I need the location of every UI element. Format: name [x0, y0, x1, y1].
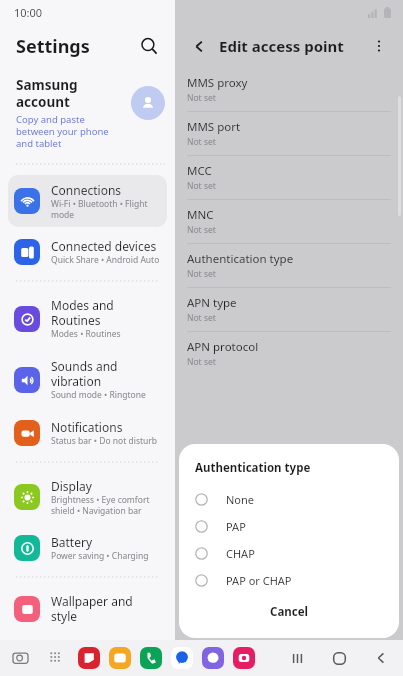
button[interactable]: APN type: [175, 288, 403, 331]
staticText: Not set: [187, 356, 216, 368]
staticText: Modes • Routines: [51, 328, 121, 340]
staticText: Quick Share • Android Auto: [51, 254, 160, 266]
button[interactable]: PAP or CHAP: [195, 567, 383, 594]
staticText: Connections: [51, 182, 122, 198]
button[interactable]: None: [195, 486, 383, 513]
staticText: Brightness • Eye comfort shield • Naviga…: [51, 494, 150, 516]
staticText: None: [226, 492, 255, 507]
staticText: Copy and paste between your phone and ta…: [16, 113, 109, 150]
button[interactable]: APN protocol: [175, 332, 403, 375]
staticText: MCC: [187, 163, 212, 179]
staticText: Not set: [187, 180, 216, 192]
staticText: Power saving • Charging: [51, 550, 149, 562]
button[interactable]: Recents: [283, 644, 311, 672]
button[interactable]: Authentication type: [175, 244, 403, 287]
staticText: Samsung account: [16, 76, 78, 111]
button[interactable]: Modes and Routines: [8, 290, 167, 347]
button[interactable]: Connections: [8, 175, 167, 227]
button[interactable]: Sounds and vibration: [8, 351, 167, 408]
staticText: Not set: [187, 268, 216, 280]
staticText: Cancel: [270, 604, 308, 620]
staticText: Not set: [187, 312, 216, 324]
staticText: Status bar • Do not disturb: [51, 435, 158, 447]
button[interactable]: Back: [367, 644, 395, 672]
button[interactable]: CHAP: [195, 540, 383, 567]
staticText: Wallpaper and style: [51, 593, 161, 624]
button[interactable]: MNC: [175, 200, 403, 243]
staticText: Sounds and vibration: [51, 358, 118, 389]
staticText: Connected devices: [51, 238, 157, 254]
button[interactable]: Display: [8, 471, 167, 523]
button[interactable]: App: [109, 647, 131, 669]
button[interactable]: Search: [135, 32, 163, 60]
staticText: Battery: [51, 534, 93, 550]
staticText: APN protocol: [187, 339, 259, 355]
staticText: Notifications: [51, 419, 123, 435]
button[interactable]: App: [233, 647, 255, 669]
staticText: 10:00: [14, 5, 43, 20]
button[interactable]: Recent apps: [8, 646, 32, 670]
button[interactable]: App: [140, 647, 162, 669]
staticText: Wi-Fi • Bluetooth • Flight mode: [51, 198, 148, 220]
staticText: Authentication type: [195, 460, 311, 476]
button[interactable]: MMS proxy: [175, 68, 403, 111]
staticText: MMS port: [187, 119, 241, 135]
button[interactable]: Connected devices: [8, 231, 167, 273]
staticText: MMS proxy: [187, 75, 248, 91]
button[interactable]: More options: [367, 34, 391, 58]
staticText: Modes and Routines: [51, 297, 161, 328]
button[interactable]: App: [202, 647, 224, 669]
button[interactable]: MMS port: [175, 112, 403, 155]
button[interactable]: Wallpaper and style: [8, 586, 167, 631]
button[interactable]: MCC: [175, 156, 403, 199]
button[interactable]: Cancel: [195, 598, 383, 626]
staticText: Display: [51, 478, 92, 494]
staticText: Authentication type: [187, 251, 294, 267]
staticText: Not set: [187, 92, 216, 104]
button[interactable]: Apps: [44, 646, 68, 670]
staticText: Not set: [187, 224, 216, 236]
staticText: APN type: [187, 295, 237, 311]
button[interactable]: App: [171, 647, 193, 669]
staticText: Edit access point: [219, 36, 344, 56]
staticText: PAP or CHAP: [226, 573, 292, 588]
button[interactable]: Samsung account: [0, 68, 175, 165]
button[interactable]: Battery: [8, 527, 167, 569]
button[interactable]: App: [78, 647, 100, 669]
button[interactable]: Back: [187, 34, 211, 58]
button[interactable]: Notifications: [8, 412, 167, 454]
staticText: Sound mode • Ringtone: [51, 389, 146, 401]
staticText: PAP: [226, 519, 246, 534]
button[interactable]: Home: [325, 644, 353, 672]
staticText: Not set: [187, 136, 216, 148]
button[interactable]: PAP: [195, 513, 383, 540]
staticText: MNC: [187, 207, 214, 223]
staticText: Settings: [16, 34, 90, 59]
staticText: CHAP: [226, 546, 255, 561]
